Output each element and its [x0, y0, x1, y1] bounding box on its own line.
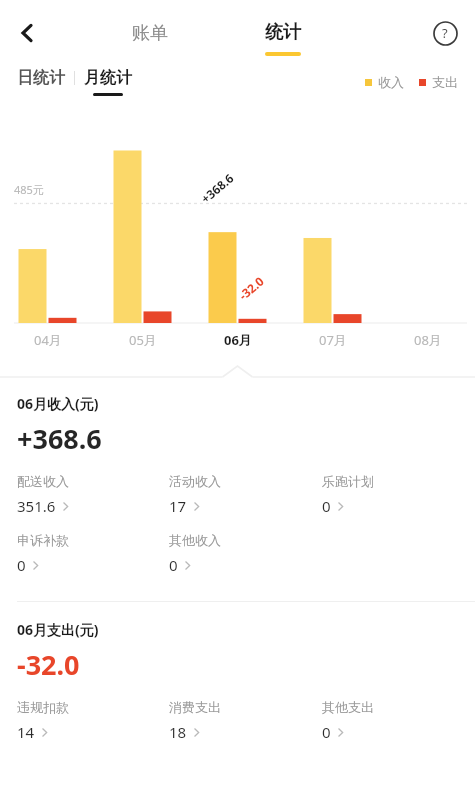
staticText: 351.6 [17, 496, 56, 516]
staticText: 0 [322, 496, 331, 516]
staticText: 17 [169, 496, 187, 516]
staticText: 申诉补款 [17, 532, 69, 548]
staticText: 06月 [224, 331, 252, 349]
button[interactable]: 统计 [255, 21, 311, 56]
button[interactable]: 乐跑计划 [322, 473, 380, 516]
button[interactable]: 活动收入 [169, 473, 227, 516]
staticText: 05月 [129, 331, 157, 349]
staticText: 账单 [132, 22, 168, 45]
button[interactable]: Back [4, 10, 50, 56]
staticText: 活动收入 [169, 473, 221, 489]
staticText: 18 [169, 722, 187, 742]
staticText: 支出 [432, 74, 458, 90]
staticText: 0 [17, 555, 26, 575]
staticText: 乐跑计划 [322, 473, 374, 489]
staticText: 其他支出 [322, 699, 374, 715]
button[interactable]: 08月 [380, 331, 475, 349]
button[interactable]: 07月 [285, 331, 380, 349]
staticText: 07月 [319, 331, 347, 349]
staticText: 收入 [378, 74, 404, 90]
button[interactable]: 05月 [95, 331, 190, 349]
button[interactable]: 其他收入 [169, 532, 227, 575]
button[interactable]: 申诉补款 [17, 532, 75, 575]
button[interactable]: 04月 [0, 331, 95, 349]
staticText: +368.6 [17, 420, 102, 457]
button[interactable]: 消费支出 [169, 699, 227, 742]
button[interactable]: 其他支出 [322, 699, 380, 742]
staticText: 配送收入 [17, 473, 69, 489]
staticText: ? [442, 24, 448, 42]
staticText: 统计 [265, 21, 301, 44]
staticText: 0 [322, 722, 331, 742]
staticText: 04月 [34, 331, 62, 349]
button[interactable]: 违规扣款 [17, 699, 75, 742]
staticText: 08月 [414, 331, 442, 349]
staticText: +368.6 [197, 170, 237, 206]
staticText: 14 [17, 722, 35, 742]
staticText: -32.0 [235, 273, 267, 303]
button[interactable]: Help [423, 11, 467, 55]
staticText: 违规扣款 [17, 699, 69, 715]
staticText: 消费支出 [169, 699, 221, 715]
staticText: 日统计 [17, 68, 65, 88]
button[interactable]: 月统计 [84, 68, 132, 96]
staticText: 0 [169, 555, 178, 575]
button[interactable]: 配送收入 [17, 473, 76, 516]
staticText: 485元 [14, 182, 44, 197]
button[interactable]: 日统计 [17, 68, 65, 88]
staticText: 月统计 [84, 68, 132, 88]
button[interactable]: 06月 [190, 331, 285, 349]
staticText: 06月支出(元) [17, 620, 99, 639]
staticText: -32.0 [17, 646, 80, 683]
staticText: 其他收入 [169, 532, 221, 548]
staticText: 06月收入(元) [17, 394, 99, 413]
button[interactable]: 账单 [118, 14, 182, 53]
